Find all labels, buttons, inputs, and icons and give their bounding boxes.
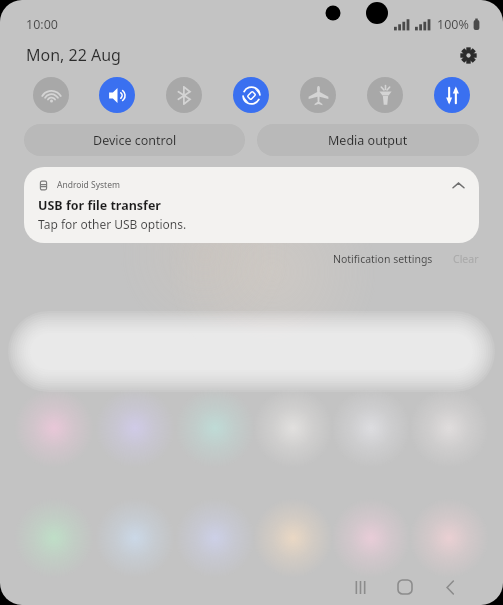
staticText: Media output <box>328 132 408 149</box>
staticText: Android System <box>57 179 120 191</box>
button[interactable]: Media output <box>257 124 479 156</box>
button[interactable]: Recents <box>343 570 377 604</box>
button[interactable]: Airplane mode <box>300 77 336 113</box>
staticText: Mon, 22 Aug <box>26 44 121 66</box>
button[interactable]: Back <box>433 570 467 604</box>
button[interactable]: Sound <box>99 77 135 113</box>
staticText: 10:00 <box>26 16 58 33</box>
button[interactable]: Flashlight <box>367 77 403 113</box>
staticText: Device control <box>93 132 177 149</box>
staticText: Clear <box>453 252 479 266</box>
button[interactable]: Device control <box>24 124 245 156</box>
button[interactable]: Home <box>388 570 422 604</box>
button[interactable]: Collapse notification <box>449 176 467 194</box>
staticText: 100% <box>437 16 469 33</box>
button[interactable]: Android System <box>24 167 479 243</box>
staticText: Notification settings <box>333 252 433 266</box>
staticText: Tap for other USB options. <box>38 216 187 232</box>
button[interactable]: Auto rotate <box>233 77 269 113</box>
staticText: USB for file transfer <box>38 197 161 214</box>
button[interactable]: Wi-Fi <box>33 77 69 113</box>
button[interactable]: Notification settings <box>329 248 437 270</box>
button[interactable]: Bluetooth <box>166 77 202 113</box>
button[interactable]: Mobile data <box>434 77 470 113</box>
button[interactable]: Clear <box>449 248 483 270</box>
button[interactable]: Settings <box>455 42 481 68</box>
